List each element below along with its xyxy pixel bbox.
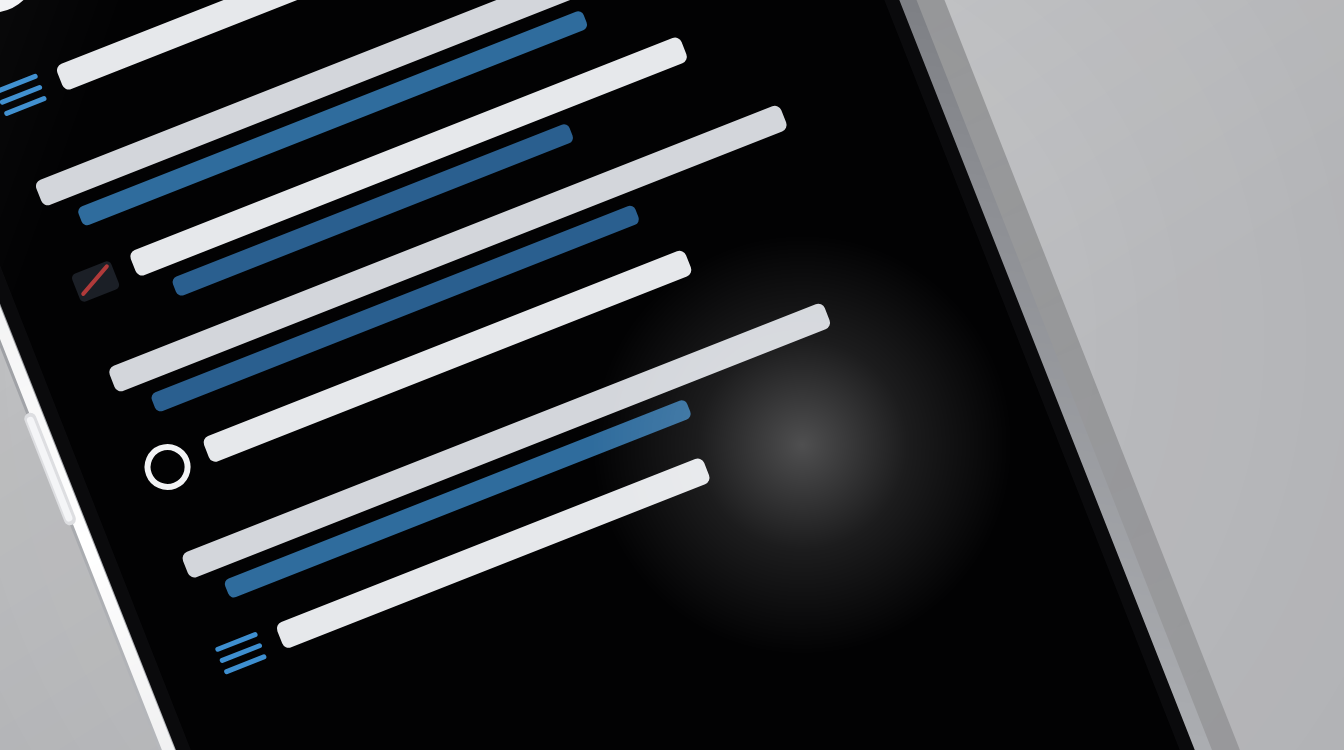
- button[interactable]: List item 2: [166, 305, 726, 351]
- button[interactable]: List item 1: [150, 250, 710, 296]
- button[interactable]: List item 6: [230, 520, 790, 566]
- button[interactable]: List item 4: [198, 415, 758, 461]
- button[interactable]: List item 5: [214, 470, 774, 516]
- button[interactable]: App title and logo: [40, 140, 370, 210]
- button[interactable]: Profile: [1095, 515, 1151, 571]
- button[interactable]: List item 3: [182, 360, 742, 406]
